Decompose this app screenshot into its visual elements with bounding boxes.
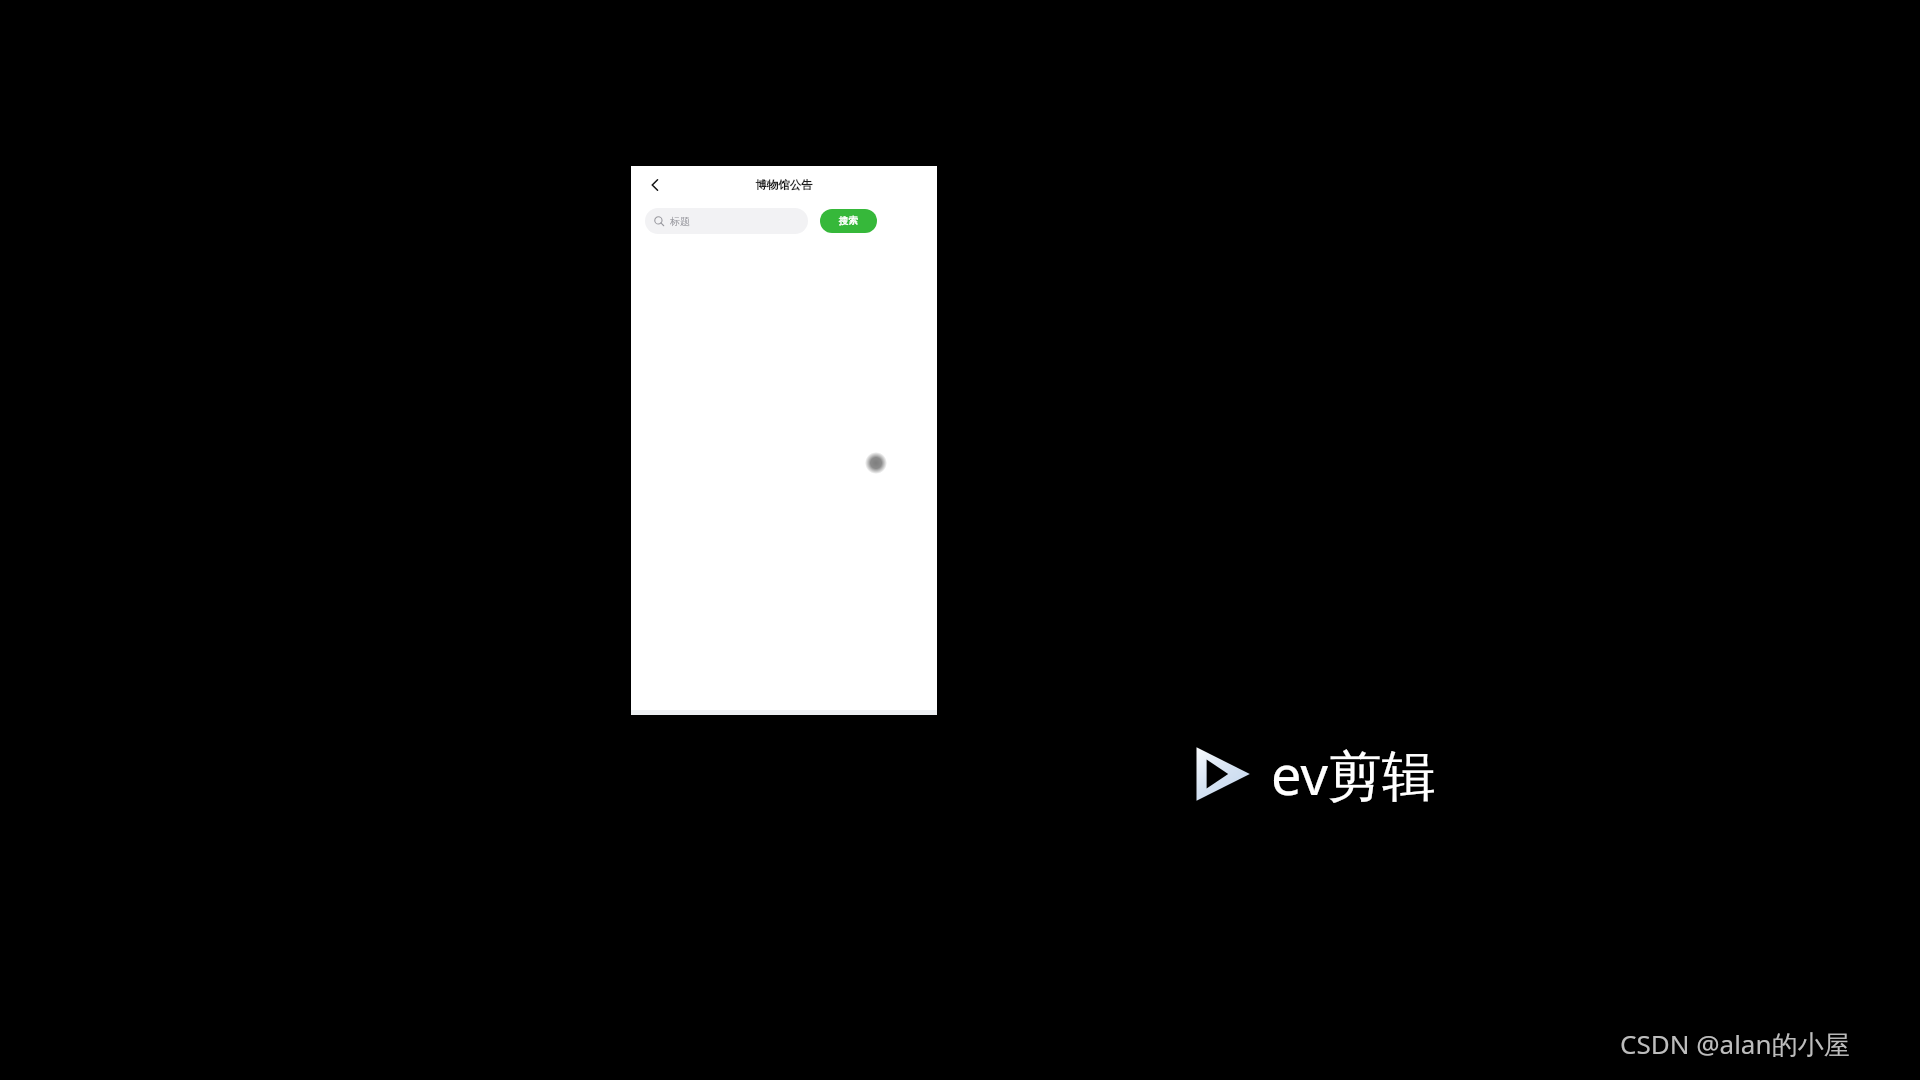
staticText: 标题: [670, 215, 690, 228]
staticText: 博物馆公告: [755, 178, 813, 192]
button[interactable]: Back: [637, 167, 673, 203]
staticText: CSDN @alan的小屋: [1620, 1026, 1850, 1062]
button[interactable]: 标题: [645, 208, 808, 234]
staticText: ev剪辑: [1271, 737, 1436, 811]
button[interactable]: 搜索: [820, 209, 877, 233]
staticText: 搜索: [839, 215, 858, 227]
